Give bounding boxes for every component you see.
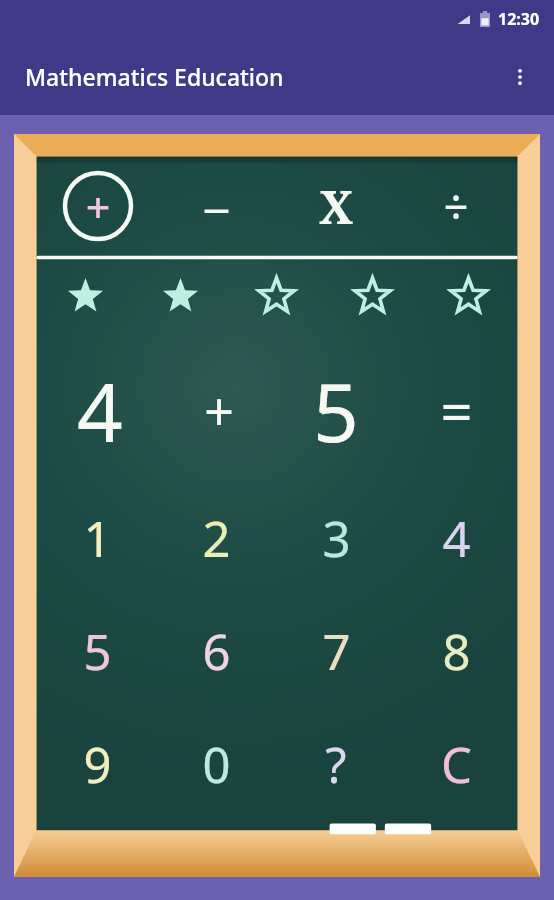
staticText: + [204,375,234,446]
button[interactable]: 1 [38,481,157,595]
staticText: 5 [313,356,359,465]
staticText: ? [325,731,347,798]
staticText: Mathematics Education [25,61,284,92]
staticText: ÷ [443,175,469,238]
staticText: 5 [83,618,112,685]
button[interactable]: More options [496,53,544,101]
button[interactable]: 2 [157,481,276,595]
staticText: + [85,175,111,238]
staticText: 4 [77,356,123,465]
staticText: 4 [442,505,471,572]
staticText: = [440,372,473,448]
button[interactable]: 6 [157,595,276,708]
button[interactable]: X [276,158,396,254]
staticText: X [319,175,353,238]
button[interactable]: ÷ [396,158,516,254]
staticText: 8 [442,618,471,685]
staticText: 12:30 [498,8,540,30]
button[interactable]: 7 [276,595,396,708]
button[interactable]: 9 [38,708,157,821]
button[interactable]: + [38,158,157,254]
button[interactable]: ? [276,708,396,821]
button[interactable]: 4 [396,481,516,595]
staticText: 1 [83,505,112,572]
staticText: 6 [202,618,231,685]
staticText: 7 [322,618,351,685]
staticText: 0 [202,731,231,798]
staticText: 2 [202,505,231,572]
staticText: C [441,731,472,798]
button[interactable]: 3 [276,481,396,595]
staticText: 9 [83,731,112,798]
staticText: 3 [322,505,351,572]
button[interactable]: 5 [38,595,157,708]
button[interactable]: – [157,158,276,254]
button[interactable]: 0 [157,708,276,821]
button[interactable]: 8 [396,595,516,708]
button[interactable]: C [396,708,516,821]
staticText: – [205,175,228,238]
